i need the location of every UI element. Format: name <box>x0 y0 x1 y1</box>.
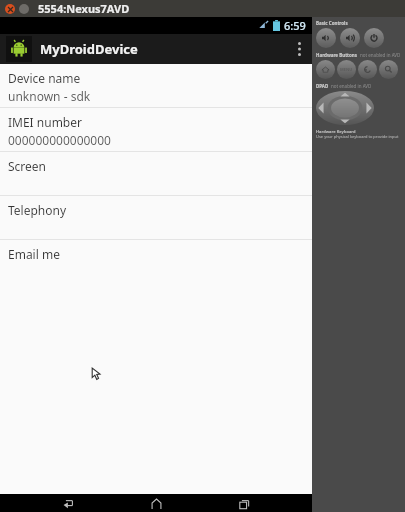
staticText: Use your physical keyboard to provide in… <box>316 134 399 139</box>
staticText: Basic Controls <box>316 20 348 26</box>
staticText: Telephony <box>8 202 67 218</box>
staticText: DPAD <box>316 83 329 89</box>
staticText: MENU <box>340 67 353 72</box>
button[interactable]: Menu <box>337 60 356 79</box>
button[interactable]: Volume up <box>340 28 360 48</box>
button[interactable]: Device name <box>0 64 312 107</box>
button[interactable]: Volume down <box>316 28 336 48</box>
staticText: IMEI number <box>8 114 82 130</box>
button[interactable]: Power <box>364 28 384 48</box>
staticText: Screen <box>8 158 47 174</box>
button[interactable]: Back <box>48 494 88 512</box>
staticText: 000000000000000 <box>8 132 111 148</box>
button[interactable]: IMEI number <box>0 108 312 151</box>
staticText: 6:59 <box>284 18 306 33</box>
staticText: MyDroidDevice <box>40 40 138 58</box>
button[interactable]: Email me <box>0 240 312 283</box>
button[interactable]: Home <box>136 494 176 512</box>
staticText: 5554:Nexus7AVD <box>38 1 130 16</box>
staticText: Hardware Keyboard <box>316 129 356 134</box>
staticText: not enabled in AVD <box>331 83 372 89</box>
staticText: Hardware Buttons <box>316 52 358 58</box>
button[interactable]: Recent apps <box>224 494 264 512</box>
button[interactable]: Telephony <box>0 196 312 239</box>
staticText: Email me <box>8 246 60 262</box>
button[interactable]: More options <box>286 34 312 64</box>
button[interactable]: Search <box>379 60 398 79</box>
staticText: Device name <box>8 70 81 86</box>
button[interactable]: Close window <box>5 4 15 14</box>
button[interactable]: Back <box>358 60 377 79</box>
button[interactable]: D-pad <box>316 91 374 125</box>
staticText: unknown - sdk <box>8 88 91 104</box>
button[interactable]: Minimize window <box>19 4 29 14</box>
button[interactable]: Screen <box>0 152 312 195</box>
button[interactable]: Home <box>316 60 335 79</box>
staticText: not enabled in AVD <box>360 52 401 58</box>
